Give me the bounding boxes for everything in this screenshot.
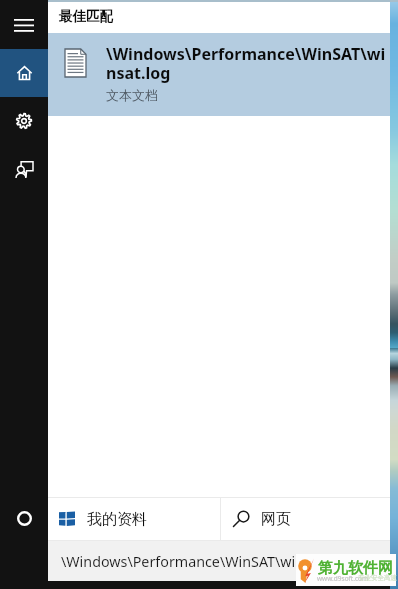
button[interactable]: Settings [0,97,48,145]
button[interactable]: Feedback [0,145,48,193]
button[interactable]: \Windows\Performance\WinSAT\winsat.log [48,33,390,116]
staticText: \Windows\Performance\WinSAT\winsat [61,552,325,571]
staticText: www.d9soft.com [317,574,369,583]
button[interactable]: 我的资料 [48,498,220,540]
button[interactable]: Cortana [0,494,48,542]
staticText: 最佳匹配 [59,8,113,25]
staticText: 网页 [261,510,291,529]
button[interactable]: \Windows\Performance\WinSAT\winsat [48,541,390,581]
button[interactable]: 网页 [221,498,390,540]
staticText: \Windows\Performance\WinSAT\winsat.log [106,43,388,84]
button[interactable]: Menu [0,0,48,49]
staticText: 第九软件网 [318,559,393,578]
staticText: 我的资料 [87,510,147,529]
staticText: 文本文档 [106,87,158,103]
button[interactable]: Home [0,49,48,97]
staticText: 专业安全高速 [358,574,397,582]
